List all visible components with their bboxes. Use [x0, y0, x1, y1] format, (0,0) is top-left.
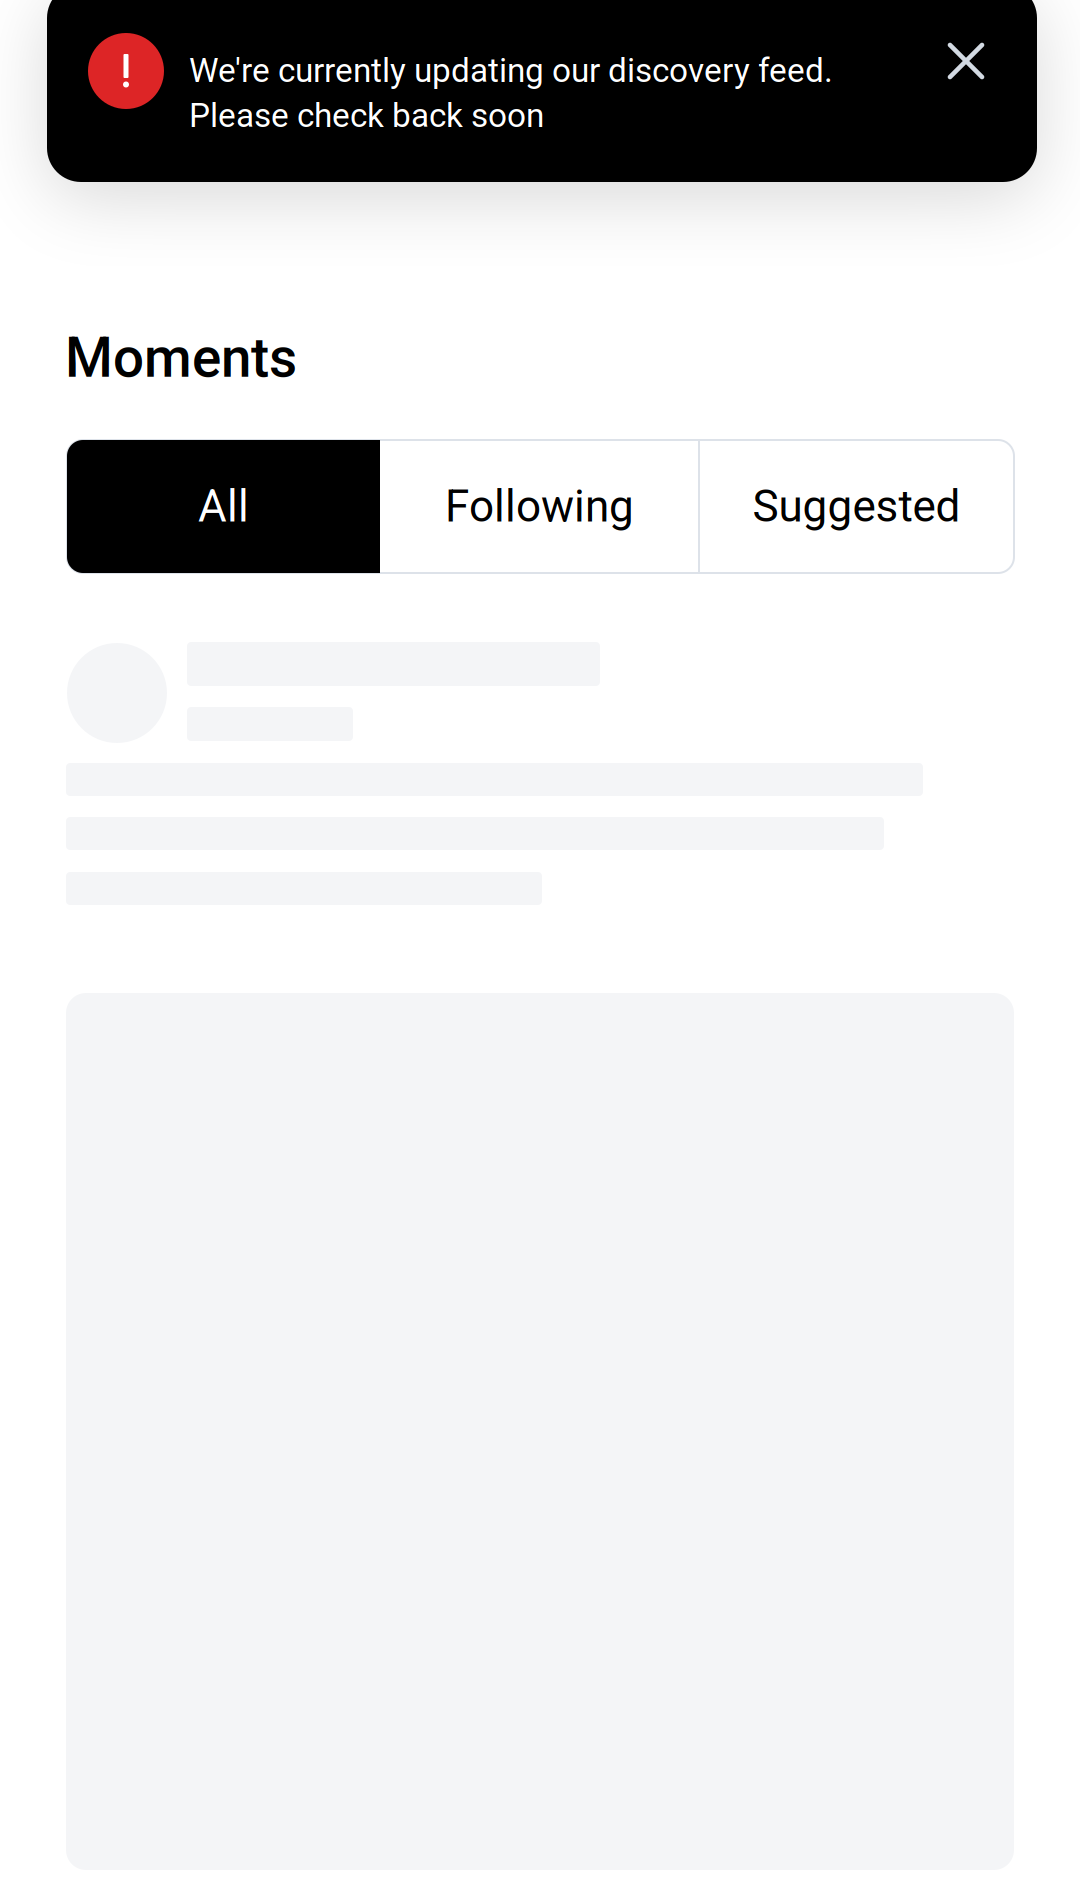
button[interactable]: Suggested [699, 440, 1014, 573]
staticText: Please check back soon [189, 96, 544, 135]
staticText: Moments [65, 326, 297, 390]
staticText: We're currently updating our discovery f… [189, 51, 833, 90]
button[interactable]: Following [380, 440, 699, 573]
staticText: Following [445, 481, 634, 532]
staticText: Suggested [752, 481, 960, 532]
button[interactable]: Dismiss [930, 25, 1002, 97]
staticText: All [198, 481, 249, 532]
button[interactable]: All [67, 440, 380, 573]
